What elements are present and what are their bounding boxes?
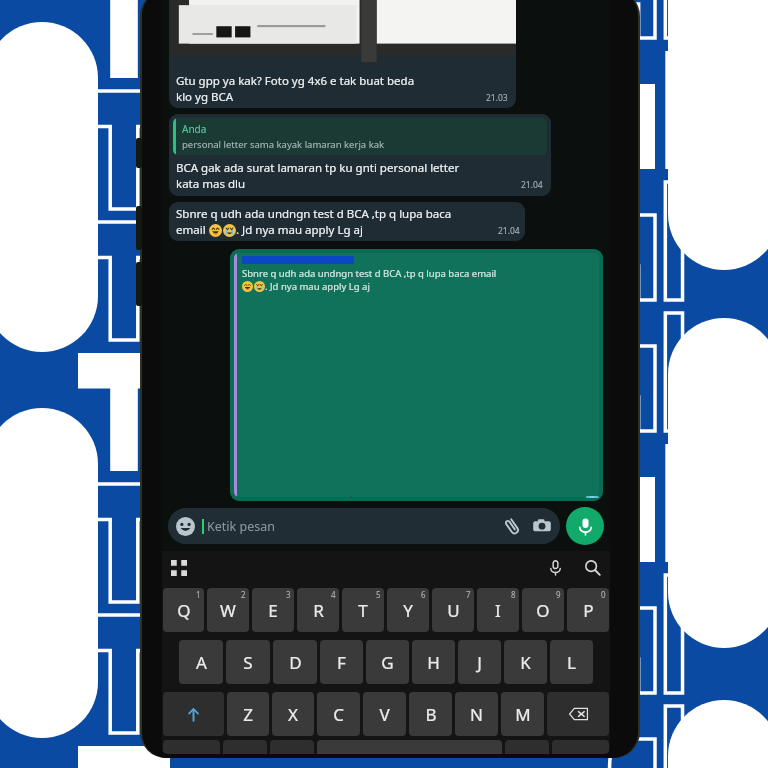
- button[interactable]: A: [179, 640, 223, 684]
- staticText: C: [333, 703, 344, 726]
- button[interactable]: R: [297, 588, 339, 632]
- button[interactable]: Sbnre q udh ada undngn test d BCA ,tp q …: [169, 202, 525, 241]
- button[interactable]: B: [409, 692, 452, 736]
- staticText: U: [447, 599, 460, 622]
- button[interactable]: J: [458, 640, 501, 684]
- staticText: . Jd nya mau apply Lg aj: [236, 222, 363, 238]
- staticText: D: [289, 651, 302, 674]
- staticText: klo yg BCA: [176, 89, 234, 105]
- button[interactable]: E: [252, 588, 294, 632]
- staticText: R: [313, 599, 324, 622]
- button[interactable]: G: [366, 640, 409, 684]
- staticText: Sbnre q udh ada undngn test d BCA ,tp q …: [176, 206, 452, 222]
- button[interactable]: Emoji: [176, 517, 195, 536]
- button[interactable]: F: [320, 640, 363, 684]
- staticText: I: [495, 599, 501, 622]
- button[interactable]: D: [273, 640, 317, 684]
- staticText: 9: [556, 589, 561, 600]
- button[interactable]: Voice input: [547, 559, 564, 576]
- staticText: E: [268, 599, 278, 622]
- staticText: Anda: [182, 122, 207, 136]
- staticText: BCA gak ada surat lamaran tp ku gnti per…: [176, 160, 460, 176]
- staticText: 3: [286, 589, 291, 600]
- button[interactable]: N: [455, 692, 498, 736]
- button[interactable]: Voice message: [566, 507, 604, 545]
- staticText: personal letter sama kayak lamaran kerja…: [182, 138, 385, 151]
- staticText: K: [520, 651, 531, 674]
- staticText: J: [477, 651, 482, 674]
- staticText: 8: [511, 589, 516, 600]
- button[interactable]: S: [226, 640, 270, 684]
- button[interactable]: Q: [163, 588, 204, 632]
- staticText: Sbnre q udh ada undngn test d BCA ,tp q …: [242, 267, 497, 280]
- button[interactable]: P: [567, 588, 609, 632]
- staticText: B: [425, 703, 437, 726]
- button[interactable]: Y: [387, 588, 429, 632]
- staticText: 4: [331, 589, 336, 600]
- staticText: P: [583, 599, 594, 622]
- staticText: W: [220, 599, 236, 622]
- staticText: L: [567, 651, 576, 674]
- button[interactable]: Attach: [502, 516, 522, 536]
- staticText: . Jd nya mau apply Lg aj: [265, 280, 370, 293]
- button[interactable]: O: [522, 588, 564, 632]
- button[interactable]: Search: [584, 559, 601, 576]
- button[interactable]: X: [272, 692, 314, 736]
- staticText: F: [337, 651, 346, 674]
- staticText: kata mas dlu: [176, 176, 246, 192]
- staticText: Q: [177, 599, 191, 622]
- staticText: N: [470, 703, 483, 726]
- button[interactable]: Backspace: [547, 692, 609, 736]
- button[interactable]: Gtu gpp ya kak? Foto yg 4x6 e tak buat b…: [169, 0, 516, 108]
- staticText: X: [288, 703, 298, 726]
- button[interactable]: K: [504, 640, 547, 684]
- staticText: 6: [421, 589, 426, 600]
- staticText: G: [381, 651, 394, 674]
- button[interactable]: M: [501, 692, 544, 736]
- staticText: Z: [243, 703, 253, 726]
- button[interactable]: Z: [227, 692, 269, 736]
- button[interactable]: Menu: [171, 560, 187, 576]
- button[interactable]: C: [317, 692, 360, 736]
- button[interactable]: L: [550, 640, 593, 684]
- staticText: O: [536, 599, 550, 622]
- staticText: Y: [403, 599, 413, 622]
- staticText: A: [196, 651, 207, 674]
- staticText: H: [427, 651, 440, 674]
- button[interactable]: Shift: [163, 692, 224, 736]
- staticText: 21.03: [486, 92, 508, 104]
- staticText: V: [379, 703, 390, 726]
- staticText: 7: [466, 589, 471, 600]
- button[interactable]: H: [412, 640, 455, 684]
- staticText: 5: [376, 589, 381, 600]
- button[interactable]: Camera: [532, 516, 552, 536]
- button[interactable]: V: [363, 692, 406, 736]
- button[interactable]: T: [342, 588, 384, 632]
- staticText: email: [176, 222, 209, 238]
- staticText: 2: [241, 589, 246, 600]
- button[interactable]: I: [477, 588, 519, 632]
- staticText: 21.04: [521, 179, 543, 191]
- staticText: Ketik pesan: [207, 518, 275, 535]
- button[interactable]: Anda: [169, 114, 551, 196]
- staticText: 0: [601, 589, 606, 600]
- staticText: Gtu gpp ya kak? Foto yg 4x6 e tak buat b…: [176, 73, 415, 89]
- staticText: 1: [196, 589, 201, 600]
- staticText: M: [515, 703, 531, 726]
- button[interactable]: U: [432, 588, 474, 632]
- staticText: T: [358, 599, 368, 622]
- button[interactable]: Sbnre q udh ada undngn test d BCA ,tp q …: [230, 249, 603, 501]
- button[interactable]: W: [207, 588, 249, 632]
- button[interactable]: Emoji: [168, 508, 560, 544]
- staticText: 21.04: [498, 225, 520, 237]
- staticText: S: [243, 651, 253, 674]
